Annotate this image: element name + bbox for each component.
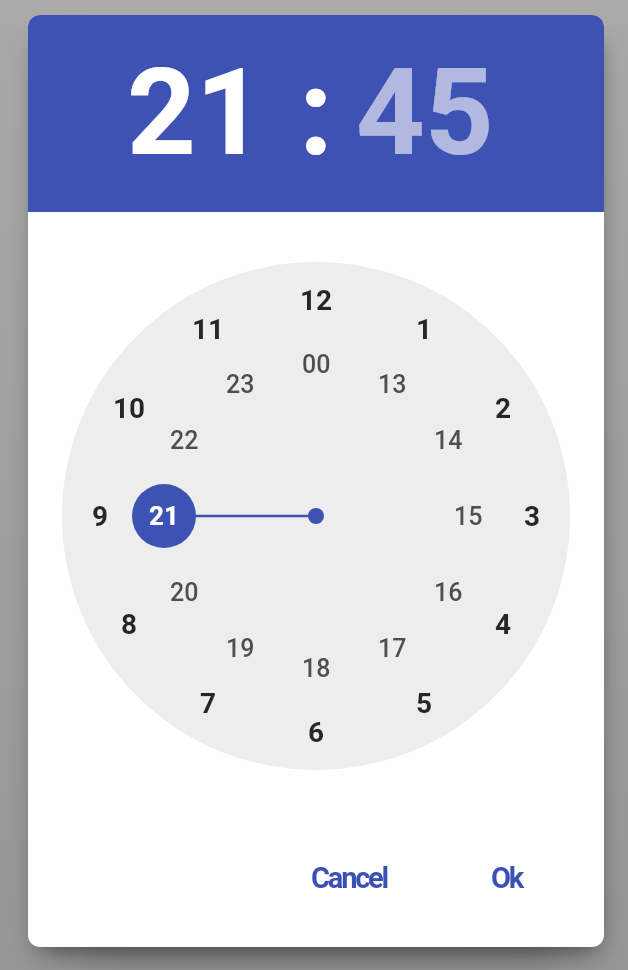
staticText: 16 — [434, 578, 463, 607]
staticText: 19 — [226, 634, 255, 663]
button[interactable]: 21 — [132, 484, 196, 548]
button[interactable]: 3 — [487, 491, 577, 541]
staticText: 6 — [308, 716, 325, 749]
button[interactable]: 5 — [379, 678, 469, 728]
staticText: 22 — [170, 426, 199, 455]
button[interactable]: 6 — [271, 707, 361, 757]
button[interactable]: 16 — [403, 567, 493, 617]
button[interactable]: Cancel — [274, 848, 424, 908]
button[interactable]: 45 — [305, 23, 545, 203]
staticText: : — [299, 43, 333, 184]
staticText: 17 — [378, 634, 407, 663]
staticText: 15 — [454, 502, 483, 531]
button[interactable]: 12 — [271, 275, 361, 325]
staticText: 18 — [302, 654, 331, 683]
staticText: 2 — [495, 392, 512, 425]
button[interactable]: 11 — [163, 304, 253, 354]
button[interactable]: 21 — [76, 23, 316, 203]
staticText: 00 — [302, 350, 331, 379]
button[interactable]: 00 — [271, 339, 361, 389]
button[interactable]: 13 — [347, 359, 437, 409]
staticText: Ok — [491, 861, 523, 895]
button[interactable]: 23 — [195, 359, 285, 409]
button[interactable]: 10 — [84, 383, 174, 433]
staticText: 12 — [300, 284, 333, 317]
staticText: 3 — [524, 500, 541, 533]
button[interactable]: 4 — [458, 599, 548, 649]
staticText: 20 — [170, 578, 199, 607]
staticText: 5 — [416, 687, 433, 720]
button[interactable]: 1 — [379, 304, 469, 354]
staticText: 7 — [200, 687, 217, 720]
button[interactable]: 22 — [139, 415, 229, 465]
staticText: 23 — [226, 370, 255, 399]
button[interactable]: 14 — [403, 415, 493, 465]
staticText: 4 — [495, 608, 512, 641]
button[interactable]: 20 — [139, 567, 229, 617]
staticText: 21 — [149, 501, 179, 531]
button[interactable]: 17 — [347, 623, 437, 673]
staticText: 1 — [416, 313, 433, 346]
button[interactable]: 15 — [423, 491, 513, 541]
staticText: 9 — [92, 500, 109, 533]
staticText: 13 — [378, 370, 407, 399]
button[interactable]: 19 — [195, 623, 285, 673]
staticText: 10 — [113, 392, 146, 425]
button[interactable]: 2 — [458, 383, 548, 433]
staticText: 11 — [192, 313, 225, 346]
button[interactable]: Ok — [447, 848, 567, 908]
staticText: 8 — [121, 608, 138, 641]
staticText: 45 — [356, 43, 494, 184]
staticText: Cancel — [311, 861, 388, 895]
button[interactable]: 9 — [55, 491, 145, 541]
button[interactable]: 18 — [271, 643, 361, 693]
staticText: 14 — [434, 426, 463, 455]
button[interactable]: 7 — [163, 678, 253, 728]
button[interactable]: 8 — [84, 599, 174, 649]
staticText: 21 — [127, 43, 265, 184]
